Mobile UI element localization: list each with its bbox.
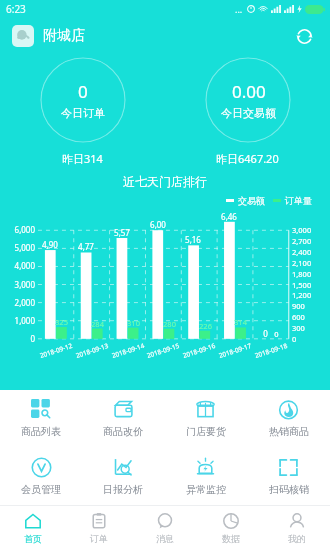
button[interactable]: 异常监控 [164, 452, 247, 500]
staticText: 数据 [222, 533, 240, 544]
staticText: 会员管理 [21, 483, 61, 496]
staticText: 0 [292, 334, 297, 344]
staticText: 我的 [288, 533, 306, 544]
staticText: 2018-09-14 [110, 341, 145, 360]
staticText: 近七天门店排行 [123, 174, 207, 189]
button[interactable]: 商品列表 [0, 394, 82, 442]
staticText: 附城店 [43, 27, 85, 45]
staticText: 1,500 [292, 280, 312, 290]
staticText: 0 [263, 328, 268, 339]
staticText: 2018-09-18 [253, 341, 288, 360]
button[interactable]: 我的 [264, 506, 330, 550]
staticText: 4,905 [40, 239, 60, 261]
staticText: 900 [292, 301, 305, 311]
staticText: 今日订单 [61, 106, 105, 120]
staticText: ... [235, 3, 243, 15]
staticText: 订单量 [285, 195, 312, 206]
staticText: 284 [91, 319, 104, 329]
staticText: 今日交易额 [221, 106, 276, 120]
staticText: 昨日314 [62, 151, 103, 166]
staticText: 昨日6467.20 [216, 151, 279, 166]
staticText: 2018-09-16 [181, 341, 216, 360]
staticText: 0.00 [232, 80, 266, 103]
button[interactable]: 数据 [198, 506, 264, 550]
staticText: 1,800 [292, 269, 312, 279]
staticText: 门店要货 [186, 425, 226, 438]
staticText: 异常监控 [186, 483, 226, 496]
staticText: 1,200 [292, 290, 312, 300]
staticText: 6,000 [14, 224, 35, 235]
button[interactable]: 消息 [132, 506, 198, 550]
staticText: 314 [234, 317, 247, 327]
button[interactable]: 订单 [66, 506, 132, 550]
staticText: 1,000 [14, 315, 35, 326]
staticText: 2018-09-12 [38, 341, 73, 360]
staticText: 5,572 [112, 227, 132, 249]
staticText: 5,000 [14, 242, 35, 253]
staticText: 3,000 [292, 225, 312, 235]
staticText: 订单 [90, 533, 108, 544]
staticText: 交易额 [238, 195, 265, 206]
staticText: 2,000 [14, 297, 35, 308]
button[interactable]: 商品改价 [82, 394, 164, 442]
staticText: 2018-09-17 [217, 341, 252, 360]
staticText: 消息 [156, 533, 174, 544]
staticText: 首页 [24, 533, 42, 544]
staticText: 300 [292, 323, 305, 333]
staticText: 2018-09-13 [74, 341, 109, 360]
staticText: 0 [30, 333, 35, 344]
staticText: 6,467 [219, 211, 239, 233]
staticText: 4,771 [76, 241, 96, 263]
button[interactable]: 门店要货 [164, 394, 247, 442]
staticText: 310 [127, 318, 140, 328]
staticText: 6,002 [148, 219, 168, 241]
staticText: 600 [292, 312, 305, 322]
staticText: 3,000 [14, 279, 35, 290]
button[interactable]: 首页 [0, 506, 66, 550]
staticText: 5,166 [183, 234, 203, 256]
button[interactable]: 会员管理 [0, 452, 82, 500]
staticText: 商品改价 [103, 425, 143, 438]
staticText: 325 [55, 317, 68, 327]
staticText: 4,000 [14, 260, 35, 271]
button[interactable]: 扫码核销 [247, 452, 330, 500]
button[interactable]: Refresh [290, 22, 318, 50]
button[interactable]: 0.00 [205, 57, 291, 143]
staticText: 日报分析 [103, 483, 143, 496]
staticText: 热销商品 [269, 425, 309, 438]
staticText: 扫码核销 [269, 483, 309, 496]
button[interactable]: 热销商品 [247, 394, 330, 442]
staticText: 2,400 [292, 247, 312, 257]
button[interactable]: 0 [40, 57, 126, 143]
staticText: 商品列表 [21, 425, 61, 438]
staticText: 280 [163, 319, 176, 329]
staticText: 0 [274, 329, 279, 339]
staticText: 2,100 [292, 258, 312, 268]
staticText: 0 [78, 80, 88, 103]
staticText: 2018-09-15 [145, 341, 180, 360]
button[interactable]: 日报分析 [82, 452, 164, 500]
button[interactable] [12, 25, 34, 47]
staticText: 6:23 [6, 2, 26, 16]
staticText: 2,700 [292, 236, 312, 246]
staticText: 226 [199, 321, 212, 331]
